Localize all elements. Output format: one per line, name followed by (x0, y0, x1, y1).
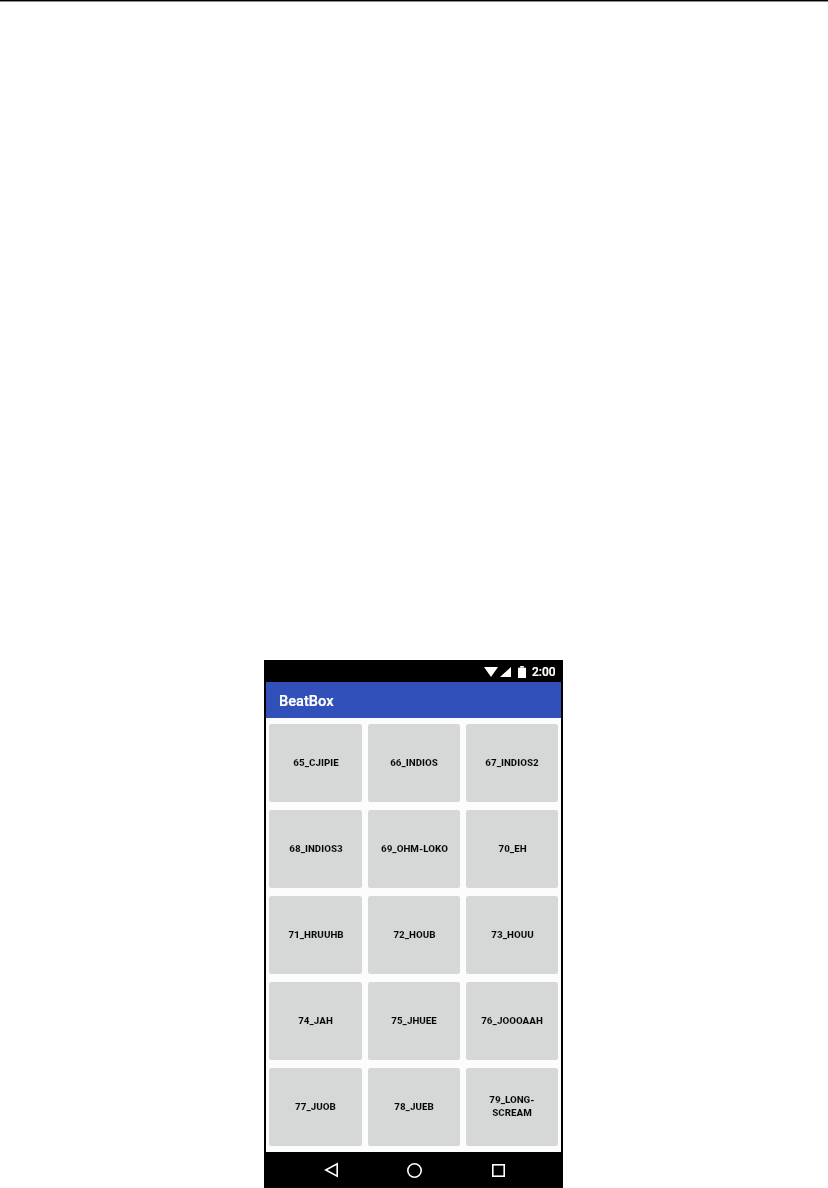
staticText: 68_INDIOS3 (289, 843, 343, 854)
staticText: 70_EH (498, 843, 527, 854)
button[interactable]: 74_JAH (269, 982, 362, 1060)
button[interactable]: Back (317, 1152, 345, 1188)
button[interactable]: 77_JUOB (269, 1068, 362, 1146)
staticText: 65_CJIPIE (293, 757, 339, 768)
staticText: BeatBox (279, 692, 334, 709)
staticText: 78_JUEB (394, 1101, 434, 1112)
button[interactable]: 67_INDIOS2 (466, 724, 558, 802)
button[interactable]: 65_CJIPIE (269, 724, 362, 802)
staticText: 72_HOUB (393, 929, 436, 940)
button[interactable]: Home (400, 1152, 428, 1188)
button[interactable]: 72_HOUB (368, 896, 460, 974)
button[interactable]: Recent apps (484, 1152, 512, 1188)
button[interactable]: 71_HRUUHB (269, 896, 362, 974)
button[interactable]: 66_INDIOS (368, 724, 460, 802)
button[interactable]: 73_HOUU (466, 896, 558, 974)
staticText: 77_JUOB (295, 1101, 336, 1112)
button[interactable]: 69_OHM-LOKO (368, 810, 460, 888)
button[interactable]: 68_INDIOS3 (269, 810, 362, 888)
staticText: 67_INDIOS2 (485, 757, 539, 768)
staticText: 75_JHUEE (391, 1015, 437, 1026)
staticText: 73_HOUU (491, 929, 534, 940)
button[interactable]: 76_JOOOAAH (466, 982, 558, 1060)
button[interactable]: 75_JHUEE (368, 982, 460, 1060)
staticText: 74_JAH (298, 1015, 333, 1026)
staticText: 66_INDIOS (390, 757, 438, 768)
staticText: 76_JOOOAAH (481, 1015, 543, 1026)
button[interactable]: 79_LONG-SCREAM (466, 1068, 558, 1146)
staticText: 2:00 (532, 665, 556, 679)
button[interactable]: BeatBox (266, 682, 561, 718)
button[interactable]: 70_EH (466, 810, 558, 888)
staticText: 71_HRUUHB (288, 929, 344, 940)
staticText: 79_LONG-SCREAM (476, 1094, 548, 1118)
button[interactable]: 78_JUEB (368, 1068, 460, 1146)
staticText: 69_OHM-LOKO (381, 843, 448, 854)
